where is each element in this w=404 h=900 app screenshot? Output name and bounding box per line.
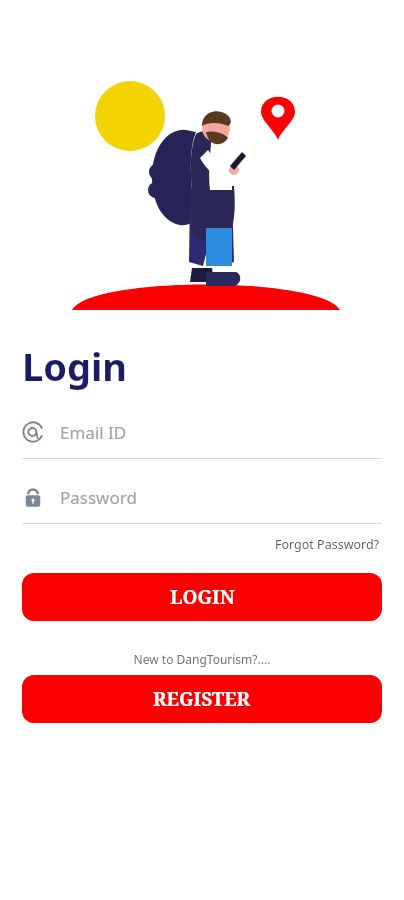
staticText: Password — [60, 486, 137, 509]
button[interactable]: Forgot Password? — [275, 534, 404, 555]
staticText: REGISTER — [153, 686, 251, 712]
staticText: New to DangTourism?.... — [0, 651, 404, 667]
button[interactable]: Email ID — [0, 416, 404, 459]
staticText: Login — [22, 340, 128, 392]
button[interactable]: LOGIN — [22, 573, 382, 621]
button[interactable]: REGISTER — [22, 675, 382, 723]
staticText: LOGIN — [170, 584, 235, 610]
staticText: Email ID — [60, 421, 127, 444]
staticText: Forgot Password? — [275, 536, 380, 553]
button[interactable]: Password — [0, 481, 404, 524]
